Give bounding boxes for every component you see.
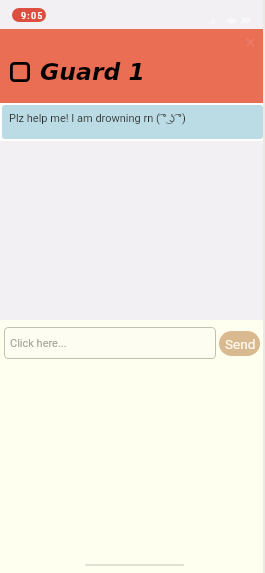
button[interactable]: Close (246, 38, 255, 47)
button[interactable]: Send (219, 331, 260, 356)
button[interactable]: Click here... (4, 327, 216, 359)
staticText: Plz help me! I am drowning rn ( ͡° ͜ʖ ͡°… (9, 112, 186, 125)
staticText: Send (225, 336, 256, 352)
staticText: 9:05 (21, 11, 44, 22)
button[interactable]: Plz help me! I am drowning rn ( ͡° ͜ʖ ͡°… (2, 105, 263, 139)
staticText: Guard 1 (40, 58, 145, 85)
button[interactable]: Clock, 9:05 (12, 8, 46, 22)
button[interactable]: App icon (10, 62, 30, 82)
staticText: Click here... (10, 337, 67, 350)
